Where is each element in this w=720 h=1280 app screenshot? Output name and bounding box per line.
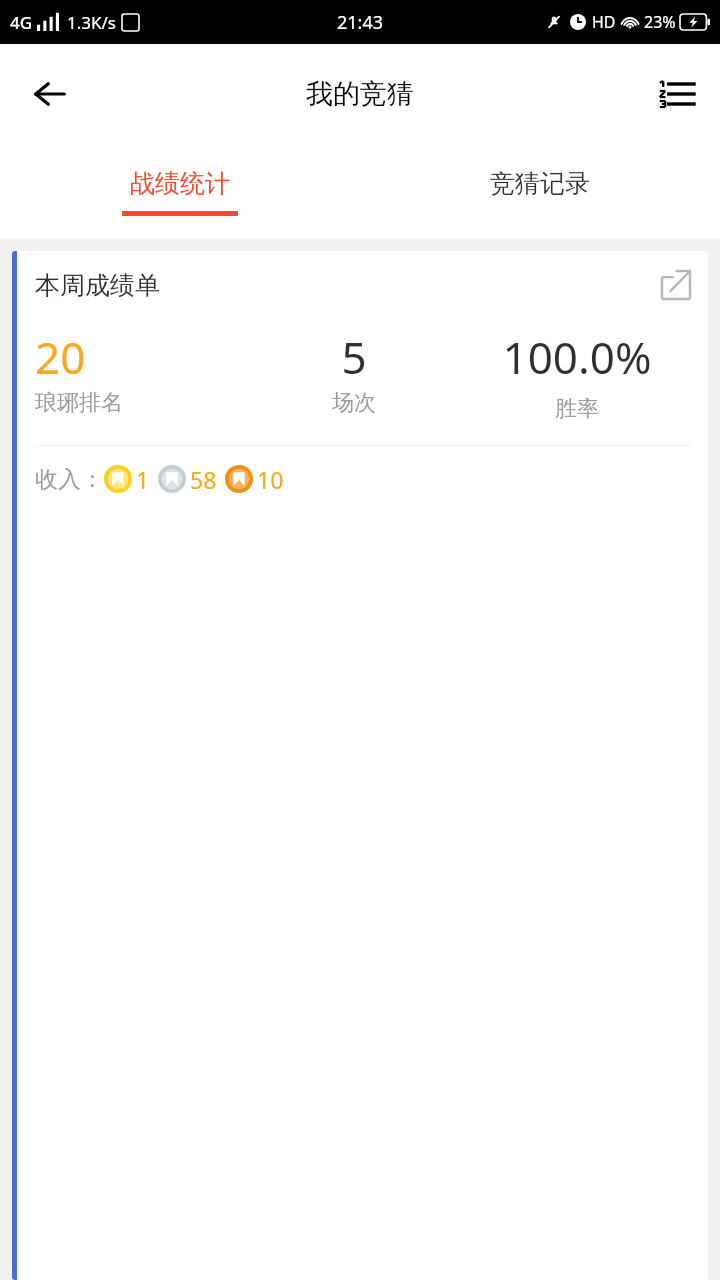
staticText: 100.0%	[502, 327, 652, 387]
staticText: 20	[35, 327, 86, 387]
button[interactable]: Open details	[658, 267, 694, 303]
staticText: 10	[257, 464, 284, 495]
staticText: 4G	[10, 11, 33, 34]
staticText: 1.3K/s	[67, 11, 116, 34]
staticText: 胜率	[555, 395, 599, 423]
staticText: 1	[136, 464, 150, 495]
staticText: HD	[592, 11, 616, 33]
staticText: 场次	[332, 389, 376, 417]
button[interactable]: 本周成绩单	[12, 251, 708, 1280]
staticText: 琅琊排名	[35, 389, 123, 417]
staticText: 竞猜记录	[490, 168, 590, 199]
button[interactable]: 战绩统计	[0, 144, 360, 239]
button[interactable]: Rankings	[648, 66, 704, 122]
staticText: 我的竞猜	[306, 77, 414, 111]
staticText: 本周成绩单	[35, 270, 160, 301]
staticText: 58	[190, 464, 217, 495]
staticText: 23%	[644, 11, 676, 33]
staticText: 收入：	[35, 465, 104, 494]
button[interactable]: Back	[22, 66, 78, 122]
staticText: 21:43	[337, 10, 384, 35]
button[interactable]: 竞猜记录	[360, 144, 720, 239]
staticText: 5	[341, 327, 367, 387]
staticText: 战绩统计	[130, 168, 230, 199]
